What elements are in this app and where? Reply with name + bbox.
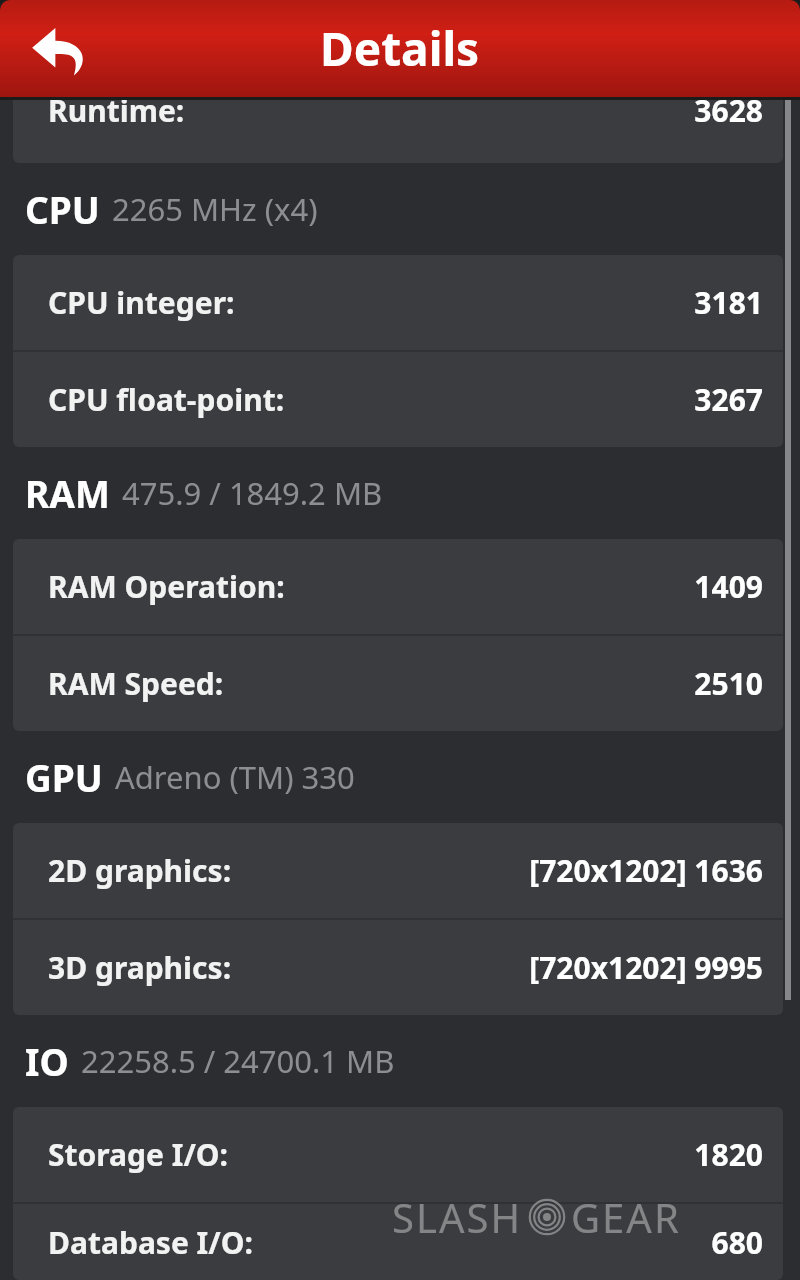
staticText: RAM	[25, 468, 110, 518]
staticText: Adreno (TM) 330	[115, 756, 355, 798]
staticText: 22258.5 / 24700.1 MB	[81, 1040, 395, 1082]
button[interactable]: Back	[22, 12, 98, 88]
staticText: RAM Speed:	[48, 663, 224, 704]
staticText: CPU float-point:	[48, 379, 285, 420]
staticText: Details	[320, 17, 480, 80]
button[interactable]: 3D graphics:	[13, 920, 783, 1015]
staticText: 3267	[694, 379, 763, 420]
staticText: 1409	[694, 566, 763, 607]
staticText: 2D graphics:	[48, 850, 232, 891]
button[interactable]: Database I/O:	[13, 1204, 783, 1280]
staticText: GEAR	[571, 1190, 681, 1244]
staticText: CPU integer:	[48, 282, 235, 323]
staticText: CPU	[25, 184, 100, 234]
button[interactable]: Runtime:	[13, 100, 783, 163]
button[interactable]: Storage I/O:	[13, 1107, 783, 1202]
button[interactable]: RAM Speed:	[13, 636, 783, 731]
staticText: SLASH	[392, 1190, 523, 1244]
staticText: Runtime:	[48, 100, 185, 131]
staticText: Database I/O:	[48, 1222, 253, 1263]
button[interactable]: CPU integer:	[13, 255, 783, 350]
staticText: [720x1202] 9995	[529, 947, 763, 988]
staticText: 1820	[694, 1134, 763, 1175]
staticText: [720x1202] 1636	[529, 850, 763, 891]
staticText: 680	[711, 1222, 763, 1263]
staticText: Storage I/O:	[48, 1134, 229, 1175]
button[interactable]: CPU float-point:	[13, 352, 783, 447]
staticText: RAM Operation:	[48, 566, 285, 607]
staticText: 2510	[694, 663, 763, 704]
staticText: 3D graphics:	[48, 947, 232, 988]
button[interactable]: 2D graphics:	[13, 823, 783, 918]
staticText: GPU	[25, 752, 103, 802]
staticText: 3181	[694, 282, 763, 323]
button[interactable]: RAM Operation:	[13, 539, 783, 634]
staticText: 3628	[694, 100, 763, 131]
staticText: IO	[25, 1036, 69, 1086]
staticText: 475.9 / 1849.2 MB	[122, 472, 383, 514]
staticText: 2265 MHz (x4)	[112, 188, 318, 230]
